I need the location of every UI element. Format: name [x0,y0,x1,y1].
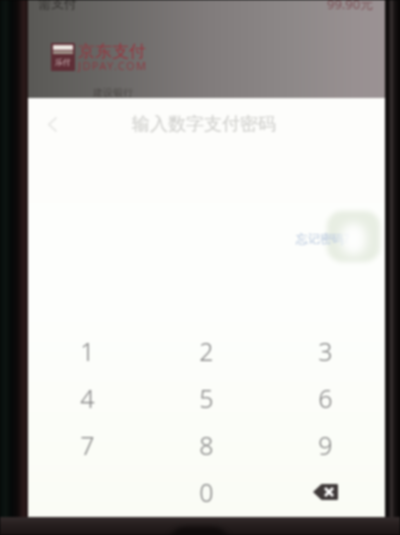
button[interactable]: 6 [266,374,385,421]
button[interactable]: 5 [147,374,266,421]
staticText: 7 [80,428,95,462]
staticText: 99.90元 [327,0,374,13]
button[interactable]: 忘记密码? [296,230,350,246]
staticText: 8 [199,428,214,462]
staticText: 输入数字支付密码 [132,113,276,136]
staticText: 忘记密码? [296,230,350,246]
staticText: 1 [80,334,95,368]
button[interactable]: 4 [28,374,147,421]
button[interactable]: 9 [266,421,385,468]
staticText: 需支付 [38,0,77,11]
button[interactable]: 8 [147,421,266,468]
button[interactable]: 3 [266,327,385,374]
button[interactable]: Delete [266,468,385,515]
staticText: 5 [199,381,214,415]
button[interactable]: 1 [28,327,147,374]
staticText: 3 [318,334,333,368]
staticText: 9 [318,428,333,462]
button[interactable]: 7 [28,421,147,468]
button[interactable]: 0 [147,468,266,515]
staticText: 6 [318,381,333,415]
button[interactable] [28,468,147,515]
staticText: 4 [80,381,95,415]
staticText: 京东支付 [78,41,146,62]
button[interactable]: 2 [147,327,266,374]
staticText: 建设银行 [93,86,133,99]
button[interactable]: Back [38,110,66,138]
staticText: 乐付 [55,57,71,67]
staticText: 0 [199,475,214,509]
staticText: JDPAY.COM [78,58,148,73]
staticText: 2 [199,334,214,368]
